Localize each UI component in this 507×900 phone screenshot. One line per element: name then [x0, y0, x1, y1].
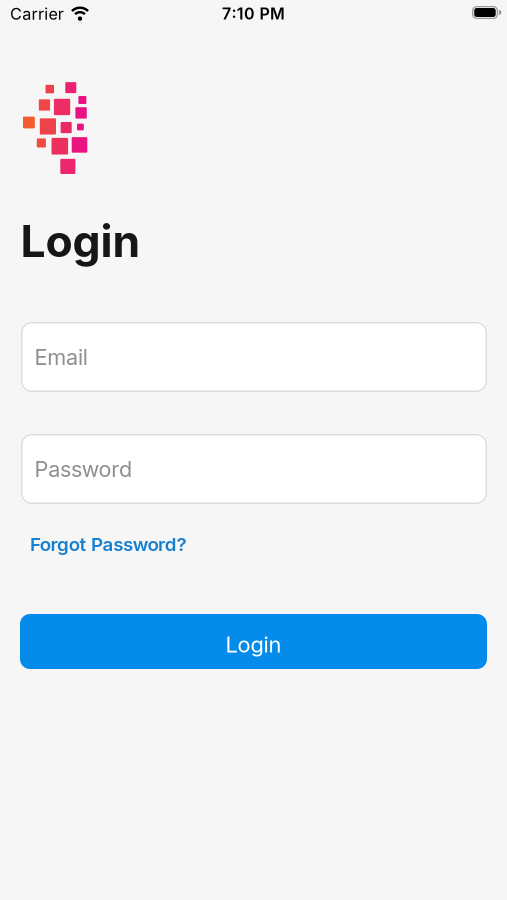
staticText: Email [34, 344, 88, 370]
staticText: Password [34, 456, 132, 482]
staticText: Carrier [10, 4, 64, 24]
staticText: Login [20, 214, 140, 268]
staticText: Login [225, 631, 281, 658]
staticText: Forgot Password? [30, 533, 186, 556]
staticText: 7:10 PM [222, 4, 285, 23]
